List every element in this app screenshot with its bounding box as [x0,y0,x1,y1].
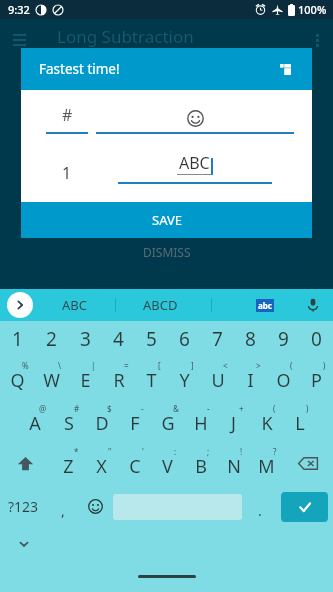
staticText: B [195,454,207,479]
button[interactable]: P [300,356,333,399]
staticText: [ [158,360,161,371]
staticText: + [239,403,244,414]
staticText: E [80,368,91,393]
button[interactable]: ?123 [0,485,47,528]
staticText: L [295,411,305,436]
button[interactable]: ABC [62,296,87,314]
staticText: : [174,446,177,457]
button[interactable]: K [250,399,283,442]
staticText: | [91,360,96,371]
button[interactable]: 0 [300,321,333,356]
button[interactable]: U [201,356,234,399]
button[interactable]: Share [274,58,296,80]
button[interactable]: J [217,399,250,442]
staticText: - [207,403,210,414]
staticText: A [29,411,41,436]
button[interactable]: Expand [7,292,33,318]
button[interactable]: Q [0,356,34,399]
staticText: C [129,454,141,479]
staticText: D [95,411,109,436]
button[interactable]: A [18,399,52,442]
staticText: M [258,454,275,479]
button[interactable]: . [244,485,276,528]
staticText: O [276,368,291,393]
staticText: ? [273,446,277,457]
staticText: I [247,368,254,393]
staticText: 3 [80,326,91,352]
button[interactable]: R [102,356,135,399]
button[interactable]: Voice input [303,295,323,315]
button[interactable]: Emoji [79,485,111,528]
staticText: R [113,368,125,393]
button[interactable]: 4 [102,321,135,356]
button[interactable]: G [151,399,184,442]
button[interactable]: 3 [68,321,102,356]
button[interactable]: Hide keyboard [16,536,32,552]
button[interactable]: Y [168,356,201,399]
button[interactable]: N [217,442,250,485]
staticText: V [162,454,173,479]
button[interactable]: B [184,442,217,485]
staticText: P [311,368,322,393]
staticText: Fastest time! [39,60,120,78]
staticText: abc [258,300,272,311]
button[interactable]: X [85,442,118,485]
staticText: W [43,368,60,393]
button[interactable]: Enter [281,492,328,522]
button[interactable]: F [118,399,151,442]
staticText: # [74,403,80,414]
button[interactable]: Z [51,442,85,485]
button[interactable]: C [118,442,151,485]
button[interactable]: 1 [0,321,34,356]
button[interactable]: DISMISS [21,238,312,266]
button[interactable]: 2 [34,321,68,356]
staticText: 9 [278,326,289,352]
button[interactable]: Delete [283,442,333,485]
button[interactable]: Shift [0,442,51,485]
staticText: G [161,411,175,436]
button[interactable]: S [52,399,85,442]
staticText: Y [179,368,190,393]
button[interactable]: 8 [234,321,267,356]
staticText: ) [306,403,309,414]
staticText: 0 [311,326,322,352]
staticText: 1 [62,162,72,184]
staticText: \ [58,360,61,371]
button[interactable]: abc [256,299,274,312]
button[interactable]: , [47,485,79,528]
button[interactable]: 9 [267,321,300,356]
button[interactable]: SAVE [21,202,312,238]
staticText: $ [107,403,112,414]
staticText: 1 [12,326,23,352]
staticText: ] [191,360,194,371]
button[interactable]: D [85,399,118,442]
button[interactable]: 5 [135,321,168,356]
button[interactable]: 6 [168,321,201,356]
button[interactable]: W [34,356,68,399]
staticText: < [223,360,228,371]
staticText: SAVE [152,211,182,229]
button[interactable]: M [250,442,283,485]
staticText: & [173,403,179,414]
staticText: = [124,360,129,371]
staticText: F [130,411,140,436]
button[interactable]: O [267,356,300,399]
staticText: U [211,368,225,393]
button[interactable]: L [283,399,316,442]
staticText: ; [207,446,210,457]
button[interactable]: H [184,399,217,442]
staticText: - [141,403,144,414]
staticText: @ [39,403,47,414]
button[interactable]: ABCD [143,296,178,314]
button[interactable]: V [151,442,184,485]
button[interactable]: E [68,356,102,399]
button[interactable]: T [135,356,168,399]
staticText: ' [142,446,144,457]
button[interactable]: I [234,356,267,399]
staticText: 7 [212,326,223,352]
button[interactable]: 7 [201,321,234,356]
staticText: > [256,360,261,371]
staticText: ?123 [8,497,39,516]
staticText: X [96,454,107,479]
